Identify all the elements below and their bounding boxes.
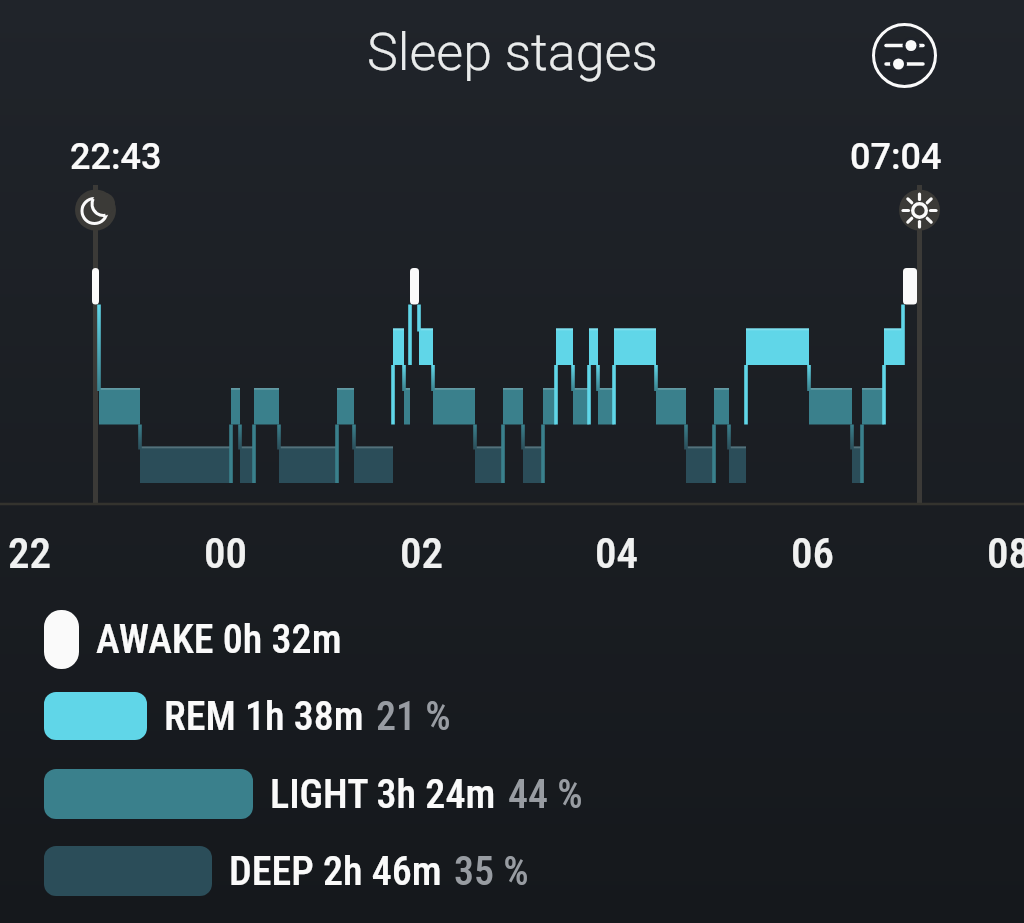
staticText: LIGHT 3h 24m [270, 771, 496, 818]
staticText: 06 [791, 528, 835, 578]
staticText: 04 [595, 528, 639, 578]
staticText: 22:43 [70, 136, 162, 178]
staticText: 08 [987, 528, 1024, 578]
staticText: Sleep stages [367, 22, 658, 83]
staticText: 22 [8, 528, 52, 578]
staticText: DEEP 2h 46m [229, 848, 442, 895]
staticText: 07:04 [850, 136, 942, 178]
staticText: REM 1h 38m [164, 693, 364, 740]
staticText: 02 [400, 528, 444, 578]
staticText: 00 [204, 528, 248, 578]
staticText: 44 % [508, 771, 583, 818]
staticText: 35 % [454, 848, 529, 895]
staticText: AWAKE 0h 32m [96, 616, 342, 663]
staticText: 21 % [376, 693, 451, 740]
button[interactable] [869, 20, 939, 90]
